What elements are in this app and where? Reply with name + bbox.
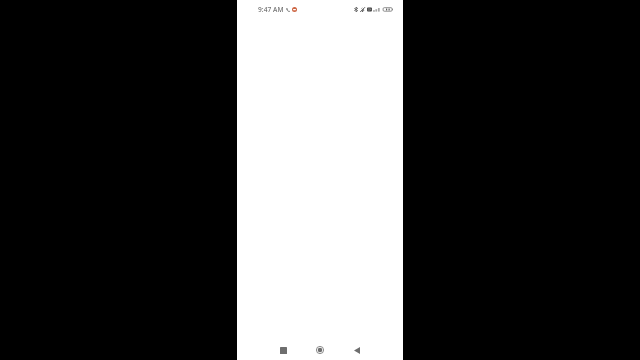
button[interactable]: Back: [347, 340, 367, 360]
staticText: 9:47 AM: [258, 5, 284, 14]
button[interactable]: Recent apps: [273, 340, 293, 360]
button[interactable]: Home: [310, 340, 330, 360]
